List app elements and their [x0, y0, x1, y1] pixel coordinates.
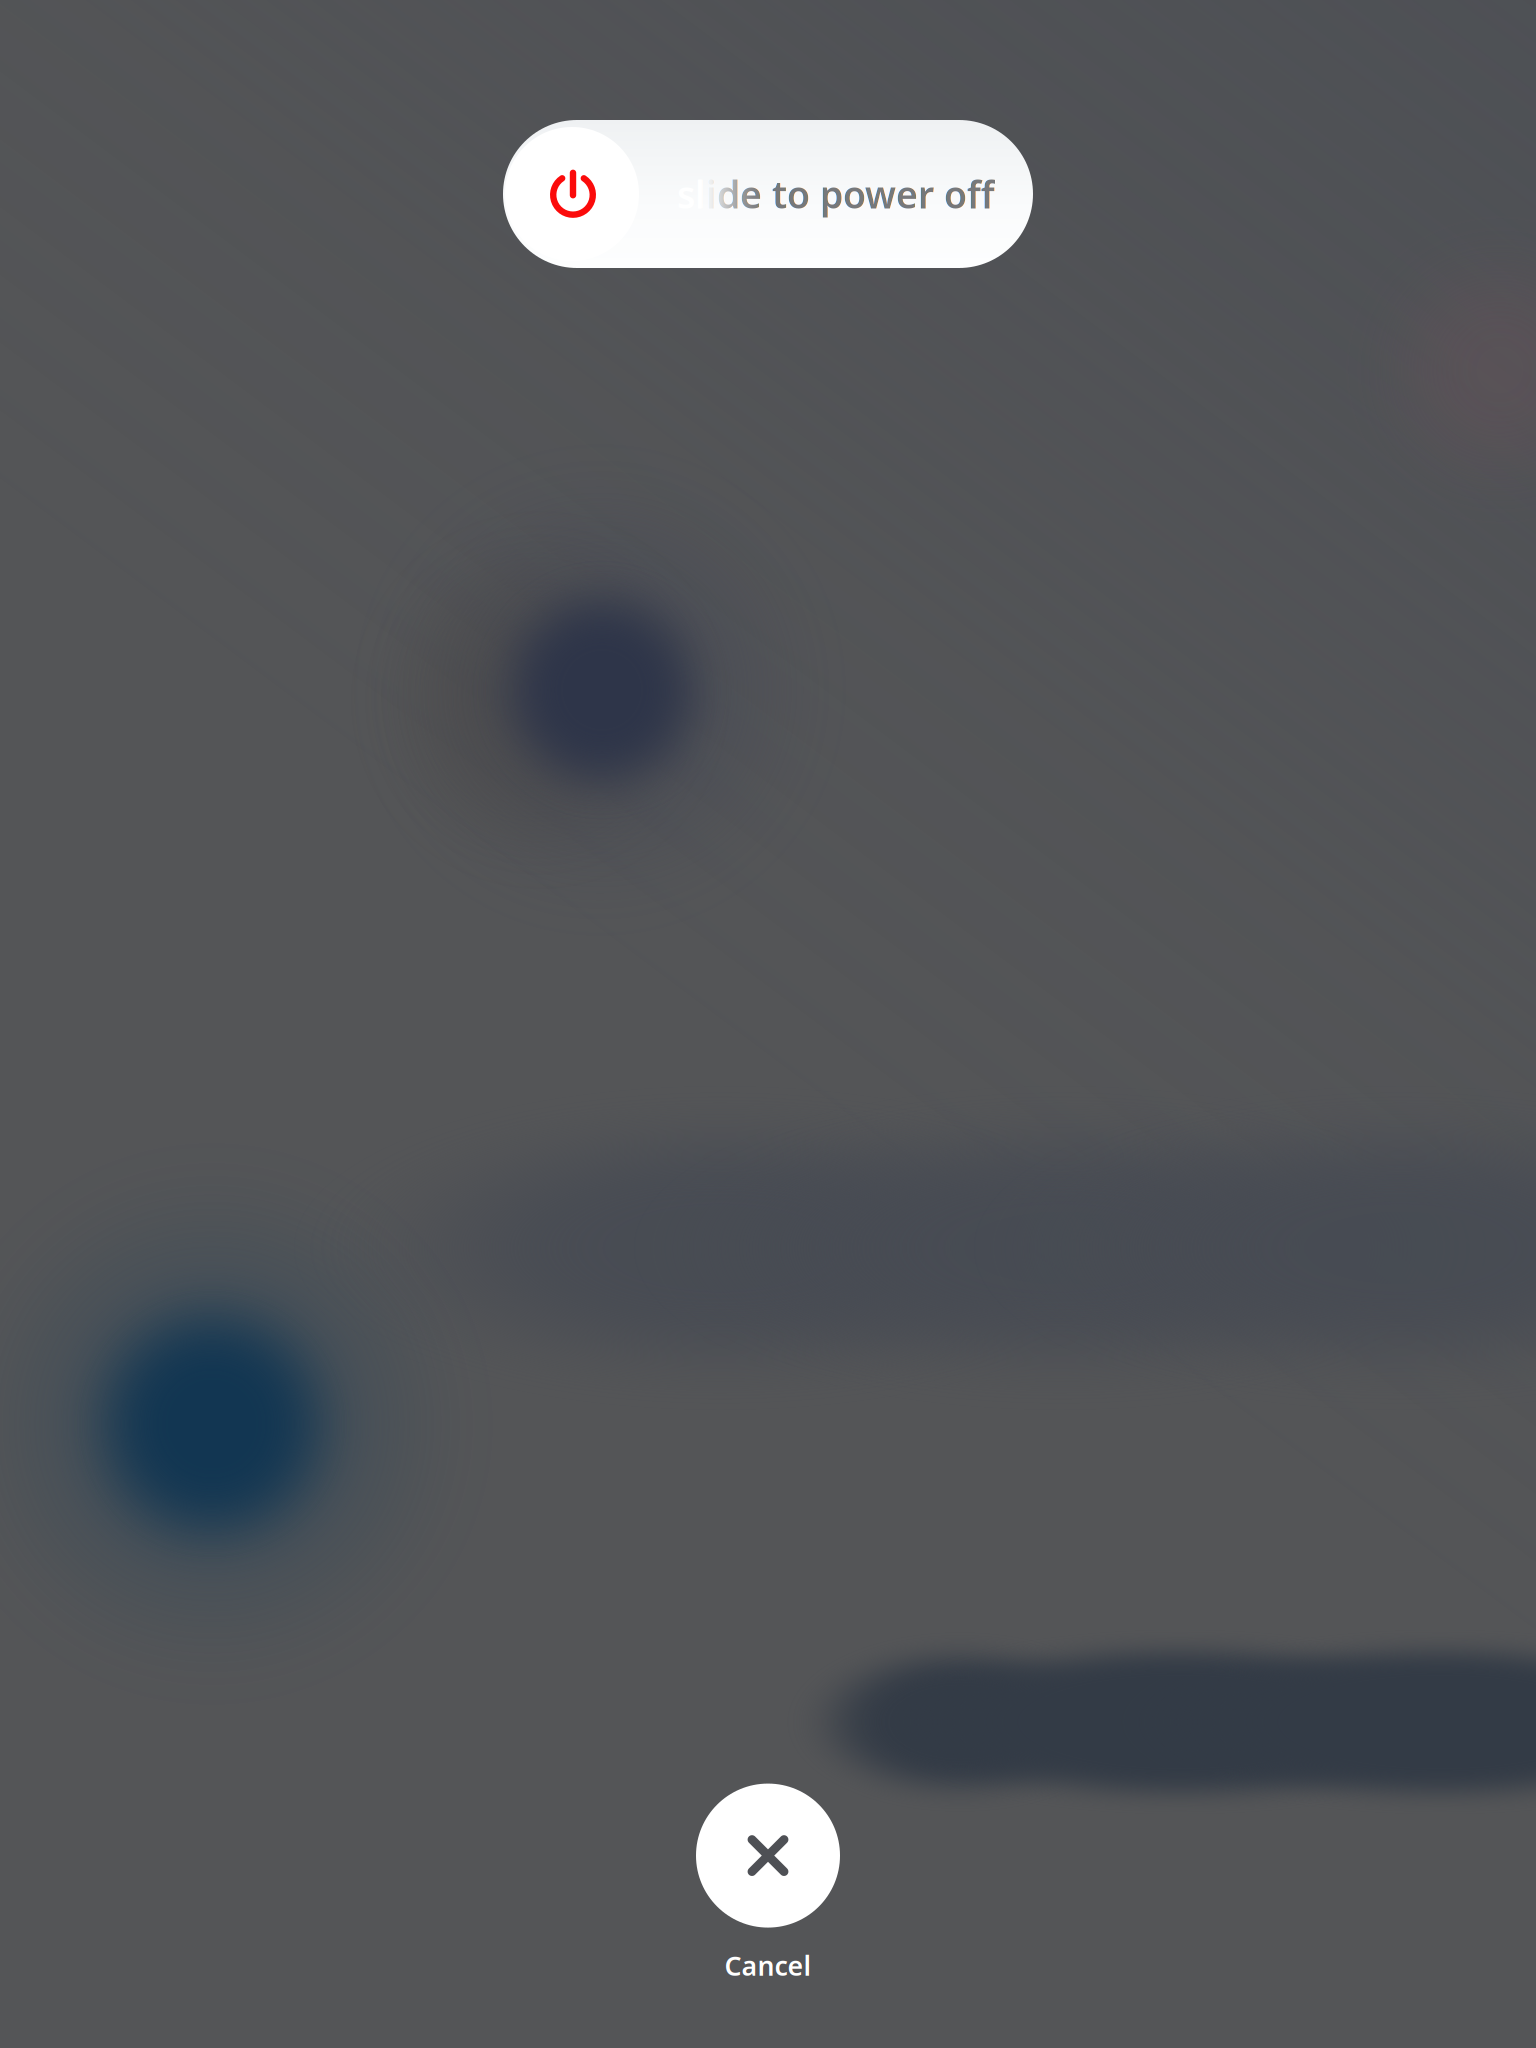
staticText: slide to power off	[677, 169, 995, 219]
button[interactable]: slide to power off	[503, 120, 1033, 268]
staticText: Cancel	[724, 1948, 811, 1983]
button[interactable]: Cancel	[696, 1784, 840, 1983]
staticText: slide to power off	[677, 169, 995, 219]
